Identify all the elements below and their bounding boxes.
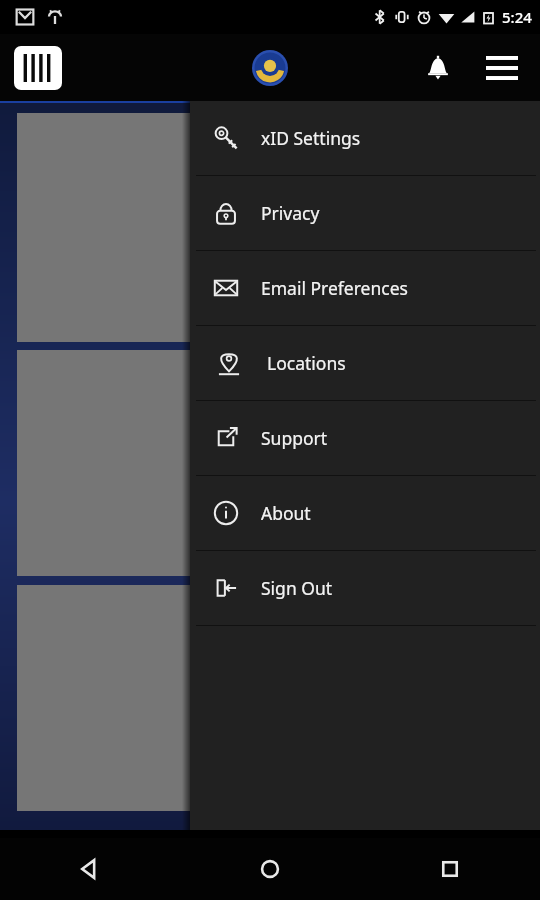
button[interactable]: Home	[180, 838, 360, 900]
button[interactable]: Sign Out	[190, 551, 540, 625]
staticText: Deals	[248, 518, 293, 541]
staticText: Locations	[267, 351, 346, 375]
button[interactable]: About	[190, 476, 540, 550]
button[interactable]: Locations	[190, 326, 540, 400]
staticText: About	[261, 501, 311, 525]
button[interactable]: Find a Class	[17, 113, 523, 342]
button[interactable]: Support	[190, 401, 540, 475]
button[interactable]: Deals	[17, 350, 523, 576]
button[interactable]: Membership barcode	[12, 42, 64, 94]
staticText: xID Settings	[261, 126, 361, 150]
button[interactable]: Record a Work	[17, 585, 523, 811]
button[interactable]: Email Preferences	[190, 251, 540, 325]
staticText: Privacy	[261, 201, 320, 225]
staticText: Find a Class	[223, 282, 318, 305]
button[interactable]: xID Settings	[190, 101, 540, 175]
button[interactable]: Privacy	[190, 176, 540, 250]
staticText: Support	[261, 426, 328, 450]
button[interactable]: Back	[0, 838, 180, 900]
button[interactable]: Notifications	[414, 44, 462, 92]
staticText: Sign Out	[261, 576, 333, 600]
button[interactable]: Home	[248, 46, 292, 90]
staticText: 5:24	[502, 7, 532, 27]
button[interactable]: Recent apps	[360, 838, 540, 900]
button[interactable]: Open navigation menu	[476, 42, 528, 94]
staticText: Email Preferences	[261, 276, 408, 300]
